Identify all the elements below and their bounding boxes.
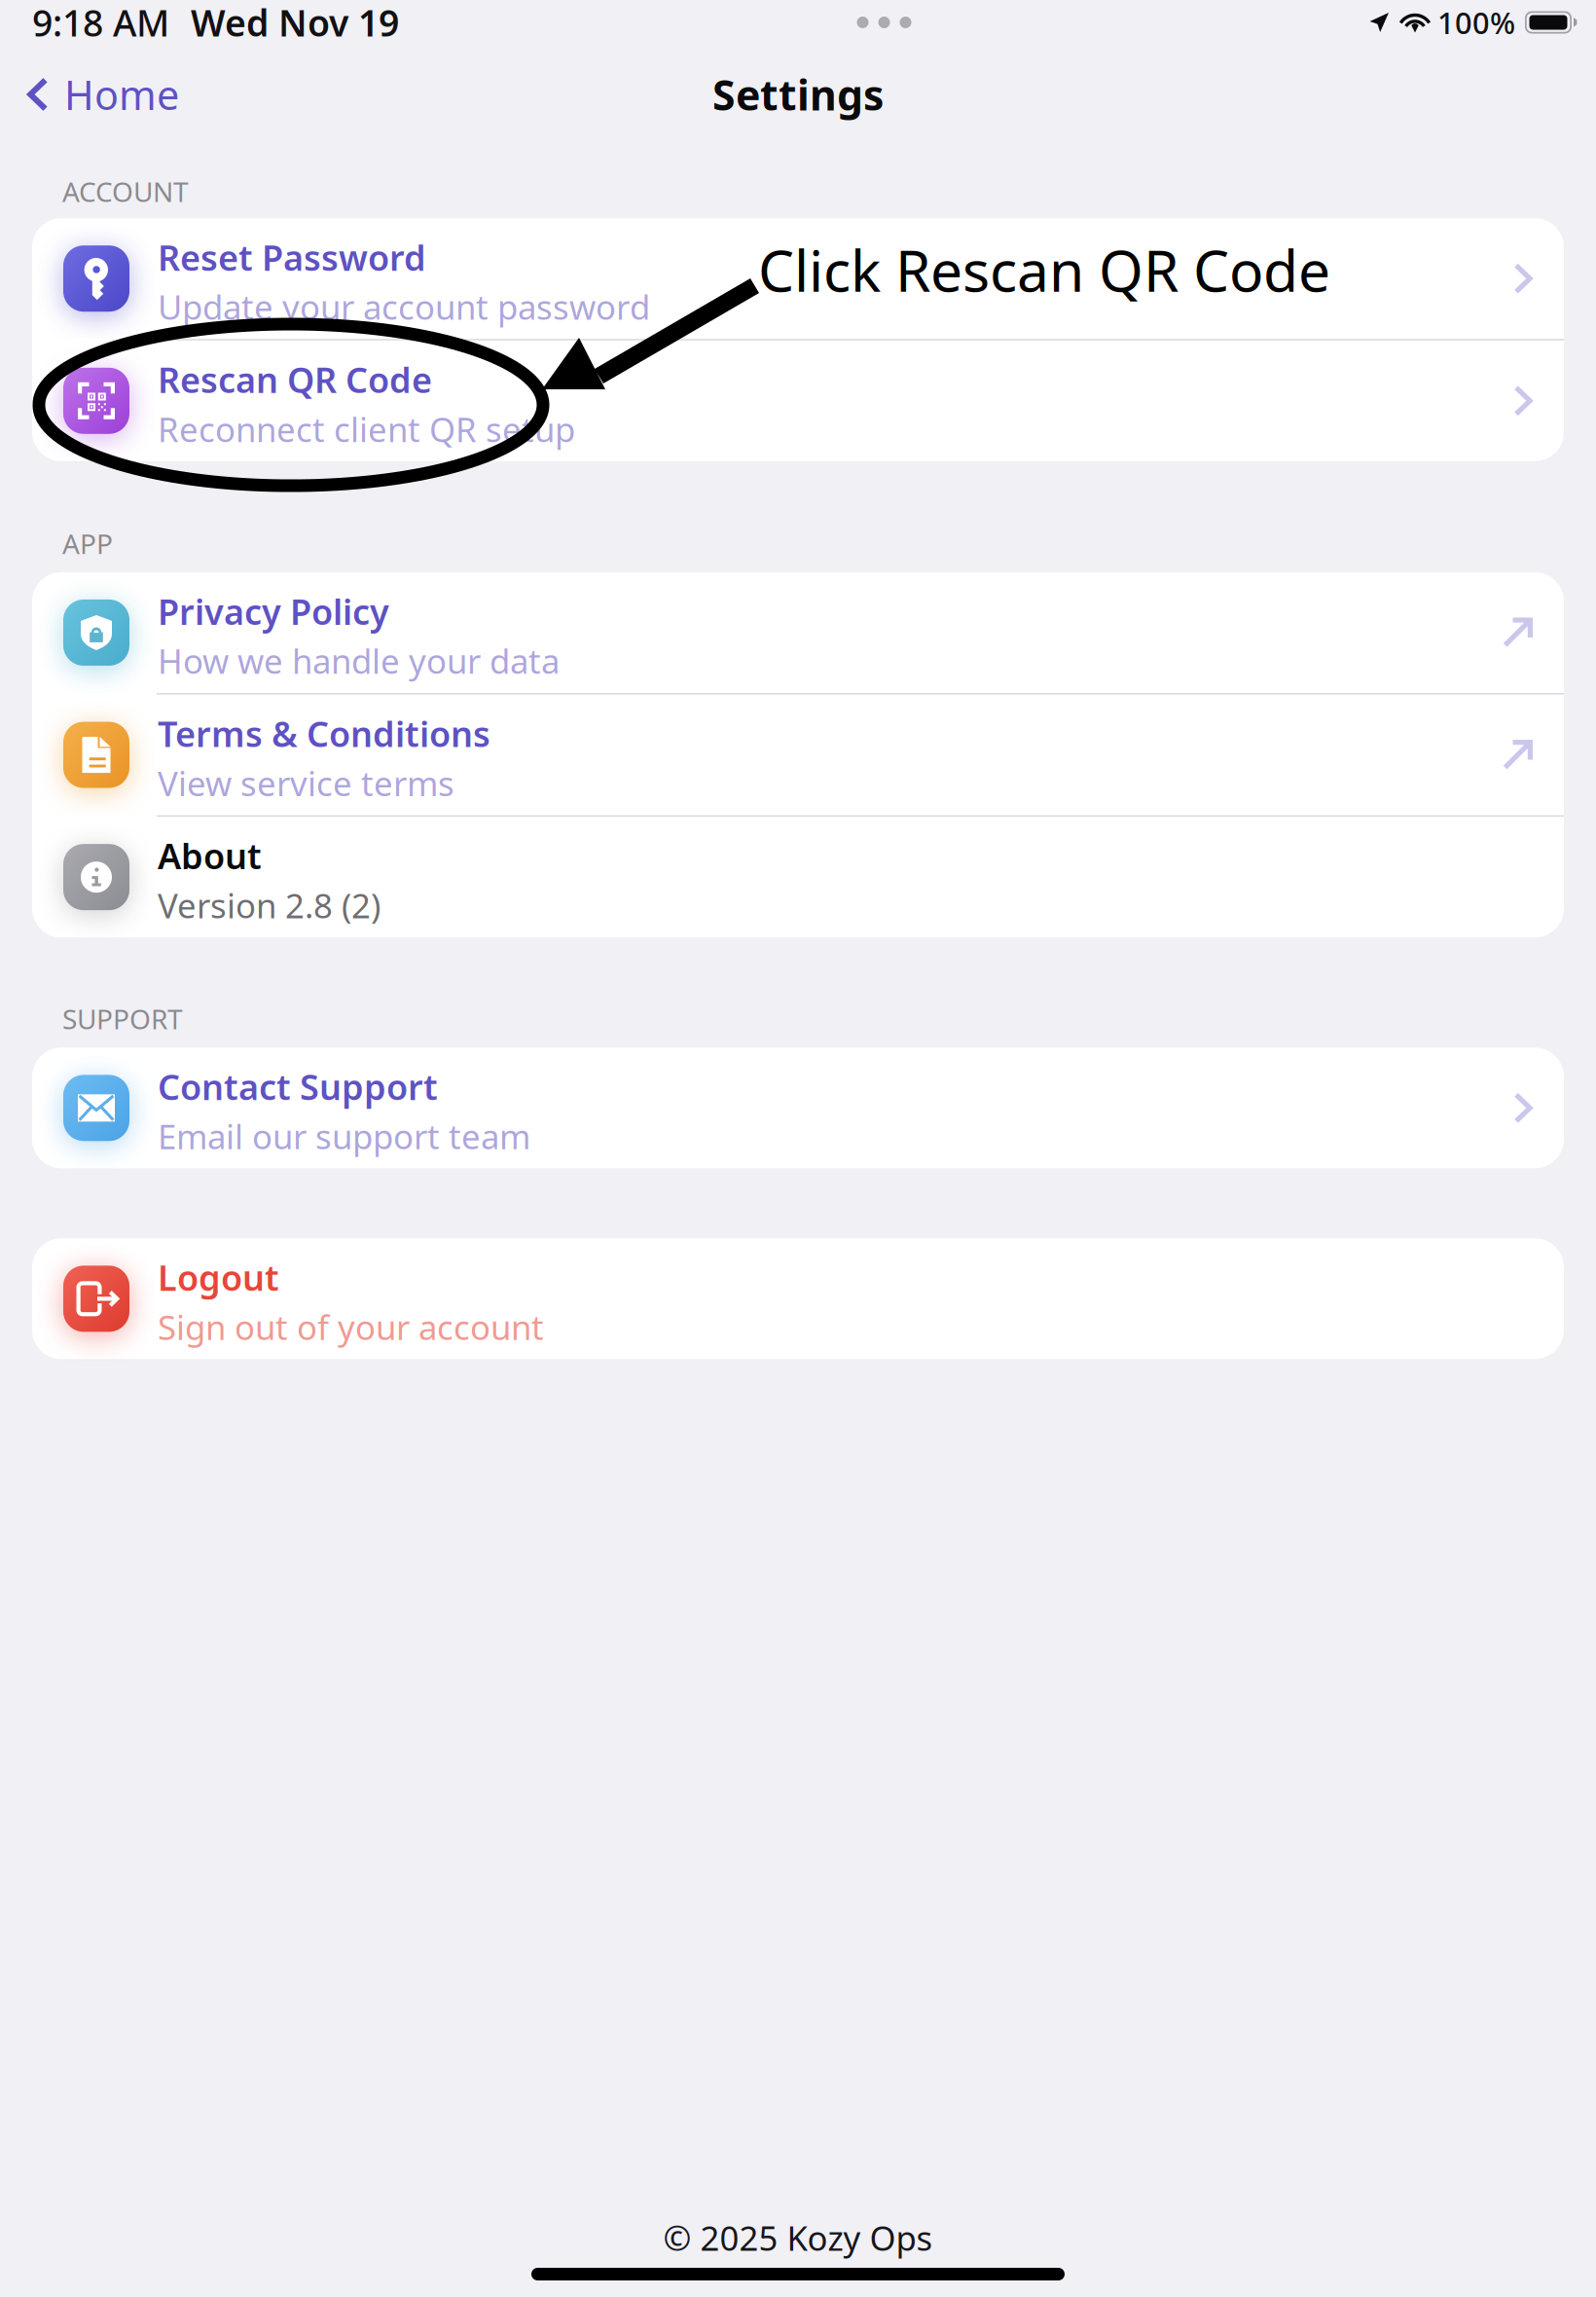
staticText: APP — [62, 525, 113, 562]
staticText: Reconnect client QR setup — [158, 407, 575, 451]
button[interactable]: Logout — [32, 1238, 1564, 1359]
staticText: How we handle your data — [158, 638, 560, 683]
staticText: Contact Support — [158, 1063, 438, 1110]
button[interactable]: Privacy Policy — [32, 572, 1564, 693]
staticText: View service terms — [158, 761, 454, 805]
button[interactable]: Terms & Conditions — [32, 695, 1564, 815]
button[interactable]: Back to Home — [0, 58, 195, 130]
staticText: Rescan QR Code — [158, 356, 432, 403]
staticText: SUPPORT — [62, 1001, 183, 1037]
button[interactable]: About — [32, 817, 1564, 937]
staticText: 100% — [1437, 3, 1515, 42]
staticText: © 2025 Kozy Ops — [663, 2215, 933, 2260]
staticText: Home — [64, 68, 179, 121]
staticText: Update your account password — [158, 284, 650, 329]
staticText: ACCOUNT — [62, 173, 189, 209]
staticText: Terms & Conditions — [158, 710, 490, 757]
button[interactable]: Contact Support — [32, 1048, 1564, 1168]
button[interactable]: Reset Password — [32, 218, 1564, 339]
staticText: Logout — [158, 1254, 279, 1301]
staticText: Click Rescan QR Code — [758, 232, 1330, 307]
staticText: Privacy Policy — [158, 588, 389, 634]
staticText: Wed Nov 19 — [191, 0, 399, 47]
staticText: Email our support team — [158, 1114, 530, 1158]
button[interactable]: Rescan QR Code — [32, 340, 1564, 461]
staticText: About — [158, 832, 262, 879]
staticText: Reset Password — [158, 234, 426, 280]
staticText: 9:18 AM — [32, 0, 169, 47]
staticText: Version 2.8 (2) — [158, 883, 381, 928]
staticText: Sign out of your account — [158, 1304, 544, 1349]
staticText: Settings — [712, 67, 884, 122]
